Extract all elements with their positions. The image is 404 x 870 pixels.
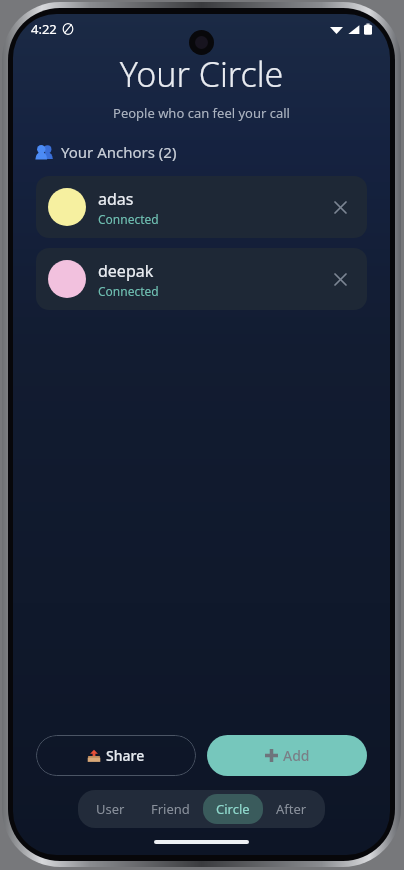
button[interactable]: Share	[36, 735, 196, 776]
staticText: After	[276, 800, 307, 818]
button[interactable]: Friend	[138, 794, 203, 824]
button[interactable]: adas	[36, 176, 367, 238]
button[interactable]: User	[83, 794, 138, 824]
button[interactable]: Add	[207, 735, 367, 776]
button[interactable]: Remove deepak	[325, 264, 355, 294]
staticText: Friend	[151, 800, 190, 818]
button[interactable]: Circle	[203, 794, 263, 824]
button[interactable]: Remove adas	[325, 192, 355, 222]
staticText: Your Circle	[13, 51, 390, 97]
staticText: User	[96, 800, 125, 818]
staticText: People who can feel your call	[13, 104, 390, 122]
staticText: Connected	[98, 283, 159, 299]
button[interactable]: deepak	[36, 248, 367, 310]
button[interactable]: After	[263, 794, 320, 824]
staticText: deepak	[98, 260, 154, 282]
staticText: adas	[98, 188, 134, 210]
staticText: Your Anchors (2)	[61, 142, 177, 162]
staticText: Share	[106, 746, 145, 765]
staticText: Connected	[98, 211, 159, 227]
staticText: Circle	[216, 800, 250, 818]
staticText: Add	[283, 746, 310, 765]
staticText: 4:22	[31, 20, 57, 38]
